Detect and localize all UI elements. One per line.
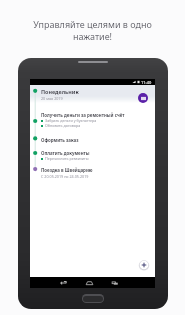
button[interactable]: Account: [138, 93, 148, 103]
button[interactable]: Понедельник: [41, 88, 125, 101]
staticText: Оформить заказ: [41, 137, 79, 143]
staticText: Обновить договора: [45, 123, 81, 128]
button[interactable]: Home: [85, 279, 93, 287]
button[interactable]: Поездка в Швейцарию: [41, 167, 125, 179]
staticText: Забрать деньги у бухгалтера: [45, 118, 97, 123]
staticText: С 20.05.2019 по 24.05.2019: [41, 174, 89, 179]
staticText: 20 мая 2019: [41, 96, 63, 101]
button[interactable]: Оформить заказ: [41, 137, 125, 143]
staticText: Перечислить реквизиты: [45, 156, 89, 161]
button[interactable]: Add: [138, 259, 150, 271]
staticText: Оплатить документы: [41, 150, 90, 156]
staticText: Понедельник: [41, 88, 79, 95]
button[interactable]: Recent apps: [111, 279, 119, 287]
button[interactable]: Back: [59, 279, 67, 287]
staticText: 11:40: [141, 80, 152, 85]
button[interactable]: Получить деньги за ремонтный счёт: [41, 112, 125, 128]
staticText: Поездка в Швейцарию: [41, 167, 93, 173]
button[interactable]: Оплатить документы: [41, 150, 125, 161]
staticText: Управляйте целями в одно нажатие!: [33, 18, 152, 43]
staticText: Получить деньги за ремонтный счёт: [41, 112, 125, 118]
